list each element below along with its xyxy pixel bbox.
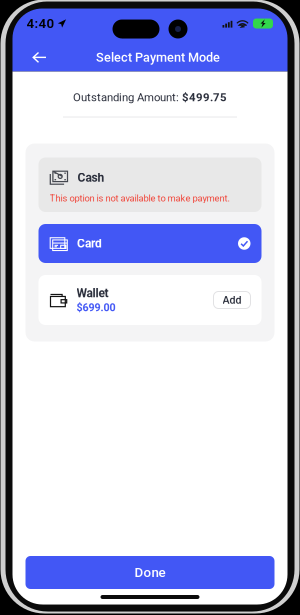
staticText: This option is not available to make pay… xyxy=(49,193,229,204)
staticText: Outstanding Amount: xyxy=(73,91,182,104)
button[interactable]: Back xyxy=(25,43,53,71)
staticText: $699.00 xyxy=(76,301,115,314)
staticText: Wallet xyxy=(76,286,108,300)
button[interactable]: Add xyxy=(213,291,250,308)
staticText: Done xyxy=(134,565,165,580)
button[interactable]: Cash xyxy=(38,157,261,212)
staticText: $499.75 xyxy=(182,91,227,104)
staticText: 4:40 xyxy=(26,16,54,31)
button[interactable]: Card xyxy=(38,224,261,263)
staticText: Card xyxy=(77,236,102,251)
button[interactable]: Wallet xyxy=(38,275,261,325)
staticText: Cash xyxy=(77,171,104,185)
button[interactable]: Done xyxy=(25,556,274,589)
staticText: Add xyxy=(222,294,241,306)
staticText: Select Payment Mode xyxy=(96,50,220,65)
